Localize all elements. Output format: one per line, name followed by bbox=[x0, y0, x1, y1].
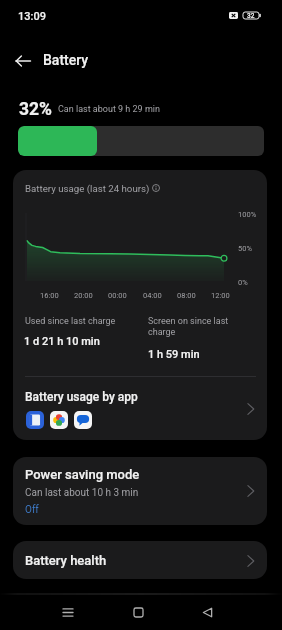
staticText: Screen on since last charge bbox=[148, 316, 252, 338]
button[interactable]: Recent apps bbox=[50, 595, 85, 630]
staticText: Can last about 9 h 29 min bbox=[58, 104, 160, 115]
staticText: 08:00 bbox=[177, 291, 196, 300]
staticText: 50% bbox=[238, 244, 252, 253]
staticText: 13:09 bbox=[18, 10, 46, 23]
staticText: 1 h 59 min bbox=[148, 348, 200, 361]
staticText: 100% bbox=[238, 210, 257, 219]
button[interactable]: Back bbox=[190, 595, 225, 630]
staticText: 16:00 bbox=[40, 291, 59, 300]
staticText: 32% bbox=[19, 99, 53, 120]
staticText: 1 d 21 h 10 min bbox=[24, 335, 100, 348]
staticText: Battery usage by app bbox=[25, 390, 138, 404]
staticText: 20:00 bbox=[74, 291, 93, 300]
staticText: 12:00 bbox=[211, 291, 230, 300]
button[interactable]: Back bbox=[8, 46, 38, 76]
staticText: Off bbox=[25, 504, 39, 516]
button[interactable]: Power saving mode bbox=[13, 457, 267, 525]
button[interactable]: Battery health bbox=[13, 541, 267, 579]
staticText: Battery bbox=[43, 52, 89, 68]
staticText: 04:00 bbox=[143, 291, 162, 300]
staticText: 0% bbox=[238, 278, 248, 287]
button[interactable]: Battery usage by app bbox=[13, 382, 267, 440]
staticText: Power saving mode bbox=[25, 467, 140, 482]
staticText: Used since last charge bbox=[25, 316, 116, 327]
staticText: 32 bbox=[247, 12, 255, 20]
staticText: 00:00 bbox=[108, 291, 127, 300]
staticText: Battery health bbox=[25, 553, 107, 568]
staticText: Can last about 10 h 3 min bbox=[25, 487, 139, 499]
button[interactable]: Home bbox=[121, 595, 156, 630]
staticText: Battery usage (last 24 hours) bbox=[25, 183, 150, 194]
